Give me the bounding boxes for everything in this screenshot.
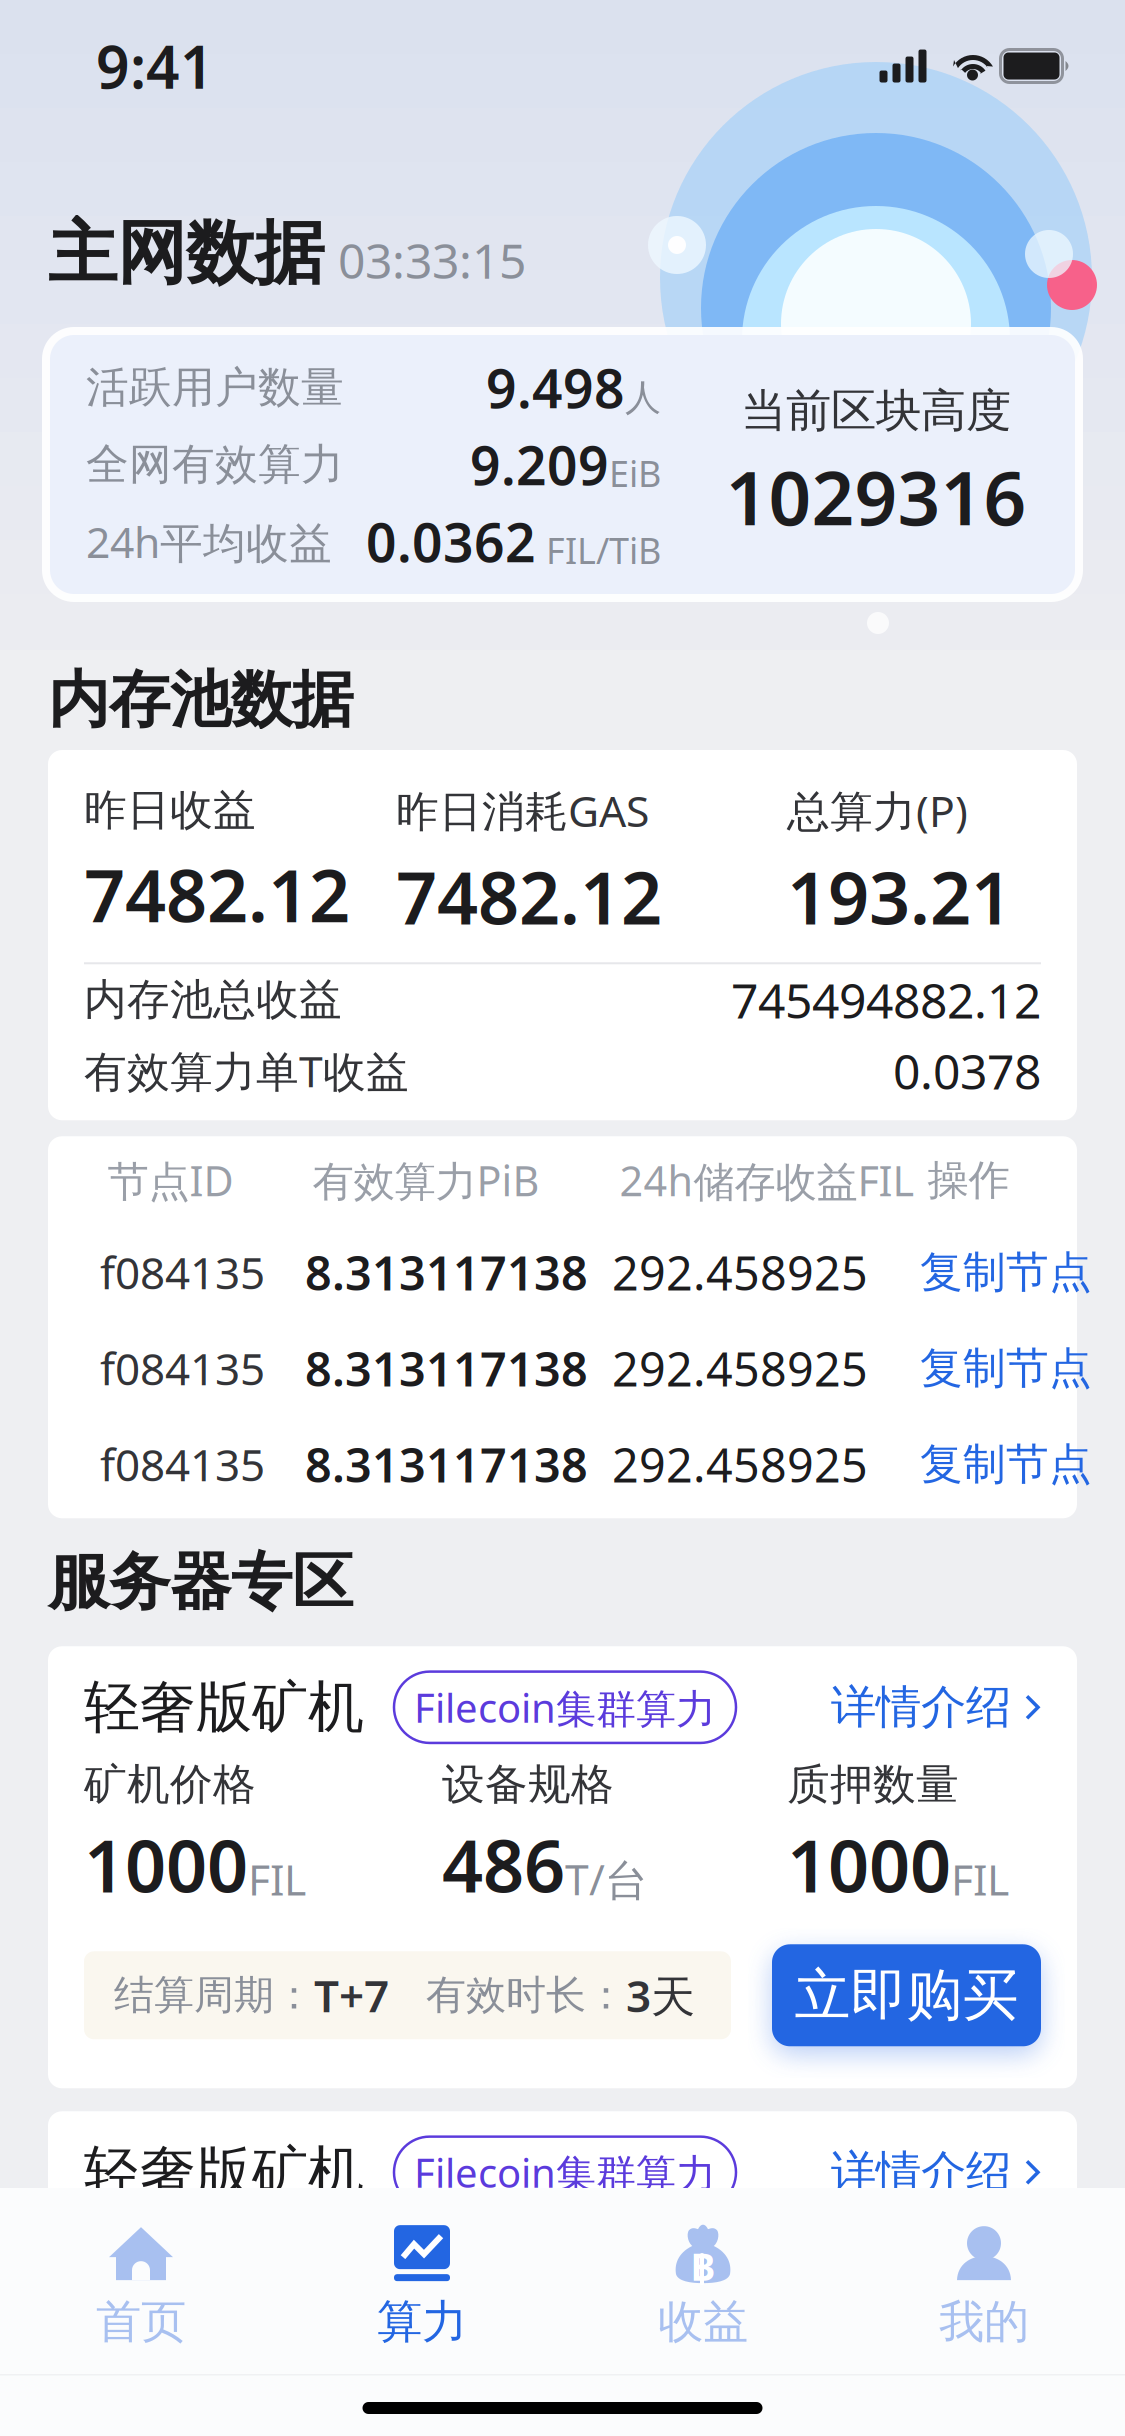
- staticText: 收益: [658, 2294, 748, 2350]
- staticText: 矿机价格: [84, 2223, 256, 2276]
- staticText: 有效算力PiB: [312, 1153, 539, 1208]
- staticText: 轻奢版矿机: [84, 1673, 364, 1742]
- staticText: 内存池数据: [48, 662, 353, 738]
- staticText: 立即购买: [794, 1961, 1018, 2030]
- staticText: 8.313117138: [305, 1433, 588, 1495]
- staticText: 服务器专区: [48, 1545, 353, 1620]
- staticText: 7482.12: [84, 846, 350, 942]
- staticText: 算力: [377, 2294, 467, 2350]
- staticText: 9:41: [96, 27, 214, 105]
- staticText: Filecoin集群算力: [414, 1681, 716, 1734]
- staticText: 292.458925: [612, 1337, 868, 1399]
- button[interactable]: 算力: [281, 2188, 562, 2374]
- button[interactable]: 详情介绍: [831, 2144, 1041, 2200]
- staticText: Filecoin集群算力: [414, 2146, 716, 2199]
- staticText: 486: [442, 2282, 565, 2377]
- staticText: 745494882.12: [731, 968, 1041, 1032]
- button[interactable]: 我的: [843, 2188, 1124, 2374]
- staticText: 24h平均收益: [86, 513, 332, 570]
- staticText: 03:33:15: [338, 228, 526, 292]
- staticText: FIL/TiB: [546, 526, 661, 574]
- staticText: f084135: [100, 1435, 265, 1493]
- staticText: 3天: [626, 1966, 695, 2024]
- staticText: 昨日消耗GAS: [396, 782, 649, 839]
- staticText: 24h储存收益FIL: [619, 1153, 914, 1208]
- button[interactable]: 立即购买: [772, 1944, 1041, 2046]
- staticText: 复制节点: [920, 1342, 1092, 1394]
- staticText: B: [690, 2241, 715, 2291]
- staticText: 人: [625, 376, 661, 420]
- staticText: 首页: [96, 2294, 186, 2350]
- staticText: T/台: [565, 1850, 648, 1907]
- staticText: 质押数量: [787, 1758, 959, 1811]
- staticText: 总算力(P): [787, 782, 968, 839]
- staticText: 主网数据: [48, 211, 324, 296]
- staticText: 复制节点: [920, 1438, 1092, 1490]
- staticText: 矿机价格: [84, 1758, 256, 1811]
- button[interactable]: 复制节点: [920, 1224, 1092, 1320]
- staticText: 1000: [787, 1817, 951, 1912]
- staticText: EiB: [609, 449, 661, 497]
- staticText: f084135: [100, 1339, 265, 1397]
- staticText: 0.0362: [366, 506, 536, 577]
- staticText: 9.209: [470, 429, 609, 500]
- staticText: 详情介绍: [831, 1679, 1011, 1735]
- staticText: 轻奢版矿机: [84, 2138, 364, 2207]
- staticText: 详情介绍: [831, 2144, 1011, 2200]
- staticText: f084135: [100, 1243, 265, 1301]
- staticText: 全网有效算力: [86, 438, 344, 491]
- staticText: 8.313117138: [305, 1337, 588, 1399]
- staticText: 1000: [787, 2282, 951, 2377]
- staticText: 活跃用户数量: [86, 361, 344, 414]
- staticText: 操作: [927, 1155, 1009, 1206]
- staticText: 当前区块高度: [741, 383, 1011, 439]
- button[interactable]: 详情介绍: [831, 1679, 1041, 1735]
- staticText: 有效算力单T收益: [84, 1042, 409, 1099]
- staticText: 设备规格: [442, 1758, 614, 1811]
- staticText: 有效时长：: [426, 1971, 626, 2020]
- button[interactable]: 复制节点: [920, 1320, 1092, 1416]
- staticText: 9.498: [486, 352, 625, 423]
- staticText: 昨日收益: [84, 784, 256, 836]
- staticText: 节点ID: [107, 1153, 233, 1208]
- staticText: 1000: [84, 2282, 248, 2377]
- button[interactable]: 复制节点: [920, 1416, 1092, 1512]
- staticText: 我的: [939, 2294, 1029, 2350]
- staticText: 1029316: [725, 447, 1026, 546]
- staticText: 292.458925: [612, 1433, 868, 1495]
- staticText: 结算周期：: [114, 1971, 314, 2020]
- staticText: 1000: [84, 1817, 248, 1912]
- staticText: 0.0378: [893, 1039, 1041, 1103]
- staticText: 486: [442, 1817, 565, 1912]
- staticText: 内存池总收益: [84, 974, 342, 1026]
- staticText: 复制节点: [920, 1246, 1092, 1298]
- staticText: FIL: [951, 1851, 1009, 1907]
- staticText: T+7: [314, 1966, 389, 2024]
- staticText: 7482.12: [396, 849, 662, 944]
- button[interactable]: B: [562, 2188, 843, 2374]
- staticText: 8.313117138: [305, 1241, 588, 1303]
- staticText: 193.21: [787, 849, 1012, 944]
- staticText: 292.458925: [612, 1241, 868, 1303]
- button[interactable]: 首页: [0, 2188, 281, 2374]
- staticText: FIL: [248, 1851, 306, 1907]
- staticText: FIL: [951, 2316, 1009, 2372]
- staticText: 设备规格: [442, 2223, 614, 2276]
